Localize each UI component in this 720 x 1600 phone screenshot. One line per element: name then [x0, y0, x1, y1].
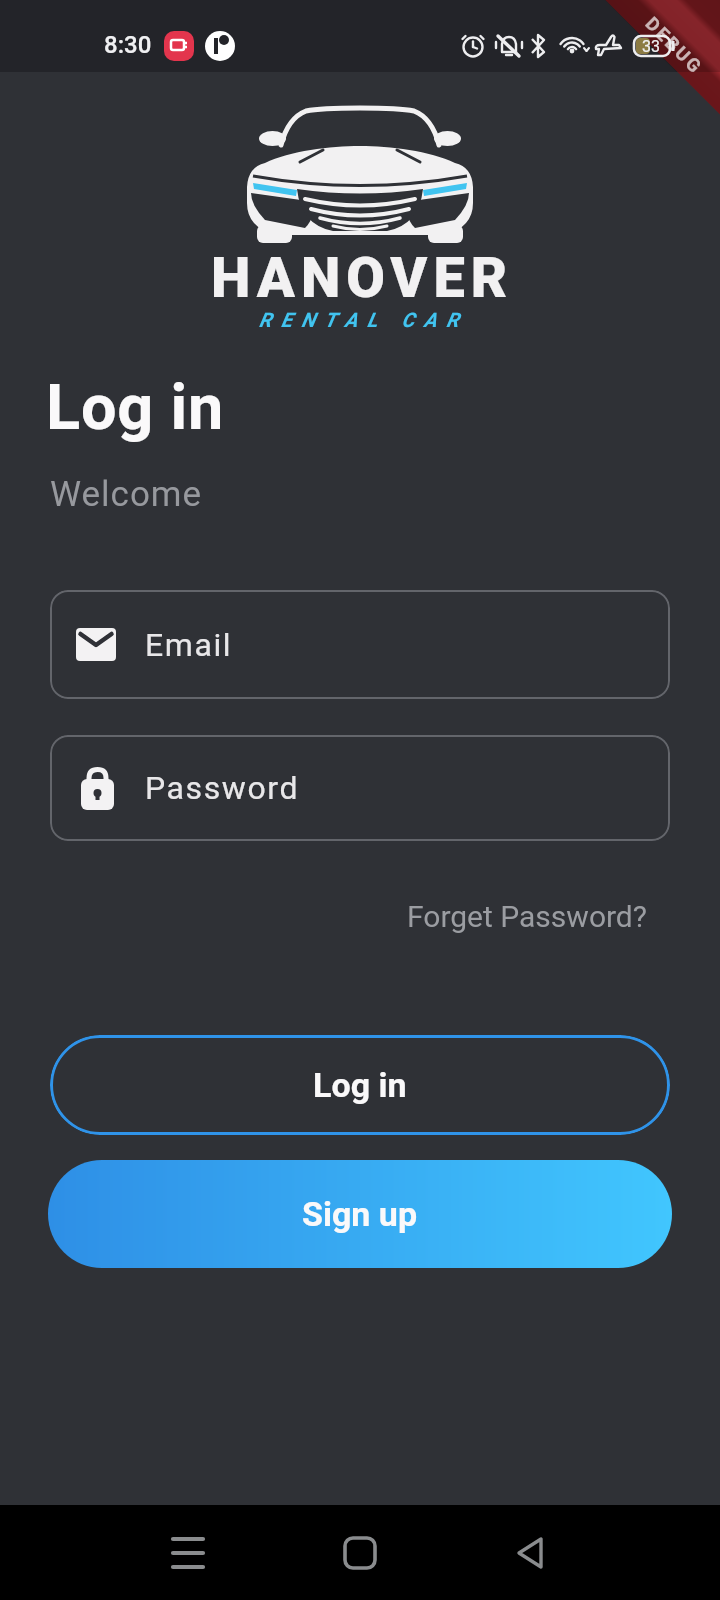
- staticText: Password: [145, 769, 300, 807]
- button[interactable]: Forget Password?: [407, 899, 647, 934]
- staticText: HANOVER: [211, 245, 514, 311]
- staticText: DEBUG: [641, 13, 707, 79]
- button[interactable]: [480, 1505, 580, 1600]
- button[interactable]: Email: [50, 590, 670, 699]
- staticText: RENTAL CAR: [259, 308, 469, 331]
- button[interactable]: Password: [50, 735, 670, 841]
- staticText: Sign up: [302, 1194, 418, 1234]
- staticText: Welcome: [50, 474, 203, 515]
- staticText: Log in: [313, 1065, 407, 1105]
- button[interactable]: [138, 1505, 238, 1600]
- button[interactable]: Log in: [50, 1035, 670, 1135]
- staticText: Log in: [46, 371, 225, 445]
- button[interactable]: Sign up: [48, 1160, 672, 1268]
- staticText: 33: [642, 37, 660, 56]
- staticText: 8:30: [104, 31, 152, 59]
- button[interactable]: [310, 1505, 410, 1600]
- staticText: Forget Password?: [407, 899, 647, 934]
- staticText: Email: [145, 626, 233, 664]
